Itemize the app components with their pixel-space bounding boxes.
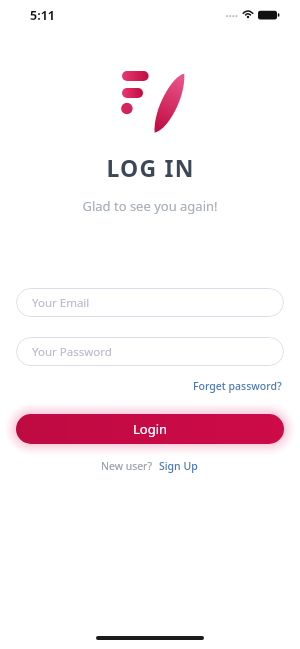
button[interactable]: Forget password? — [191, 377, 284, 395]
button[interactable]: Your Email — [16, 288, 284, 317]
staticText: Forget password? — [193, 379, 282, 393]
staticText: LOG IN — [106, 152, 195, 183]
staticText: Glad to see you again! — [82, 197, 218, 215]
button[interactable]: Login — [16, 414, 284, 444]
staticText: Login — [133, 420, 168, 438]
staticText: 5:11 — [30, 7, 55, 24]
staticText: Your Email — [32, 295, 90, 311]
button[interactable]: Sign Up — [157, 457, 200, 475]
staticText: Sign Up — [159, 459, 198, 473]
other: Signal, Wi-Fi and battery status — [226, 8, 288, 22]
staticText: Your Password — [32, 344, 112, 360]
button[interactable]: Your Password — [16, 337, 284, 366]
staticText: New user? — [101, 459, 153, 473]
